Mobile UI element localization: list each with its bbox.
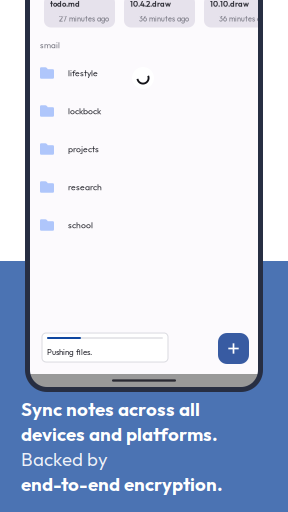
staticText: 36 minutes ago	[219, 14, 269, 23]
staticText: end-to-end encryption.	[21, 472, 223, 496]
button[interactable]: school	[30, 206, 258, 244]
staticText: 36 minutes ago	[139, 14, 189, 23]
staticText: 27 minutes ago	[59, 14, 109, 23]
staticText: smail	[40, 40, 60, 50]
button[interactable]: 10.10.draw	[204, 0, 275, 27]
staticText: school	[68, 219, 93, 230]
staticText: devices and platforms.	[21, 422, 218, 446]
button[interactable]: 10.4.2.draw	[124, 0, 195, 27]
button[interactable]: research	[30, 168, 258, 206]
staticText: lifestyle	[68, 67, 98, 78]
staticText: Backed by	[21, 447, 108, 471]
staticText: 10.4.2.draw	[130, 0, 171, 9]
staticText: 10.10.draw	[210, 0, 249, 9]
button[interactable]: projects	[30, 130, 258, 168]
button[interactable]: lifestyle	[30, 54, 258, 92]
button[interactable]: New note	[218, 333, 249, 364]
staticText: todo.md	[50, 0, 80, 9]
button[interactable]: todo.md	[44, 0, 115, 27]
staticText: Pushing files.	[47, 347, 92, 357]
staticText: projects	[68, 143, 99, 154]
button[interactable]: lockbock	[30, 92, 258, 130]
staticText: research	[68, 181, 102, 192]
staticText: lockbock	[68, 105, 101, 116]
staticText: Sync notes across all	[21, 397, 200, 421]
